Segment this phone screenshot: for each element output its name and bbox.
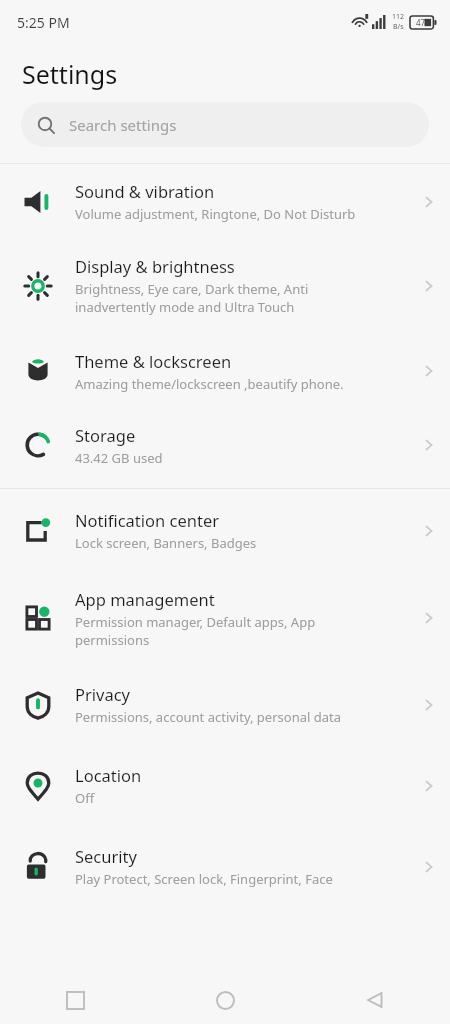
- staticText: 43.42 GB used: [75, 449, 163, 467]
- staticText: Volume adjustment, Ringtone, Do Not Dist…: [75, 205, 356, 223]
- button[interactable]: Home: [150, 976, 300, 1024]
- staticText: Sound & vibration: [75, 180, 215, 202]
- button[interactable]: Search settings: [21, 102, 429, 147]
- staticText: Security: [75, 845, 137, 867]
- staticText: Privacy: [75, 683, 131, 705]
- staticText: 112: [392, 12, 405, 22]
- staticText: Permissions, account activity, personal …: [75, 708, 341, 726]
- button[interactable]: Security: [0, 826, 450, 907]
- staticText: App management: [75, 588, 215, 610]
- button[interactable]: Location: [0, 745, 450, 826]
- staticText: Location: [75, 764, 142, 786]
- staticText: Off: [75, 789, 95, 807]
- staticText: Search settings: [69, 115, 177, 135]
- button[interactable]: Notification center: [0, 489, 450, 572]
- button[interactable]: Display & brightness: [0, 239, 450, 332]
- button[interactable]: Recent apps: [0, 976, 150, 1024]
- staticText: Amazing theme/lockscreen ,beautify phone…: [75, 375, 344, 393]
- staticText: Permission manager, Default apps, App pe…: [75, 613, 316, 649]
- button[interactable]: Storage: [0, 410, 450, 480]
- staticText: Notification center: [75, 509, 220, 531]
- button[interactable]: App management: [0, 572, 450, 664]
- staticText: Settings: [22, 57, 118, 91]
- staticText: Theme & lockscreen: [75, 350, 232, 372]
- button[interactable]: Sound & vibration: [0, 164, 450, 239]
- staticText: Display & brightness: [75, 255, 235, 277]
- staticText: B/s: [393, 22, 404, 32]
- staticText: Storage: [75, 424, 136, 446]
- staticText: 47: [416, 17, 426, 28]
- button[interactable]: Privacy: [0, 664, 450, 745]
- button[interactable]: Theme & lockscreen: [0, 332, 450, 410]
- staticText: Lock screen, Banners, Badges: [75, 534, 257, 552]
- button[interactable]: Back: [300, 976, 450, 1024]
- staticText: 5:25 PM: [17, 13, 70, 32]
- staticText: Play Protect, Screen lock, Fingerprint, …: [75, 870, 333, 888]
- staticText: Brightness, Eye care, Dark theme, Anti i…: [75, 280, 309, 316]
